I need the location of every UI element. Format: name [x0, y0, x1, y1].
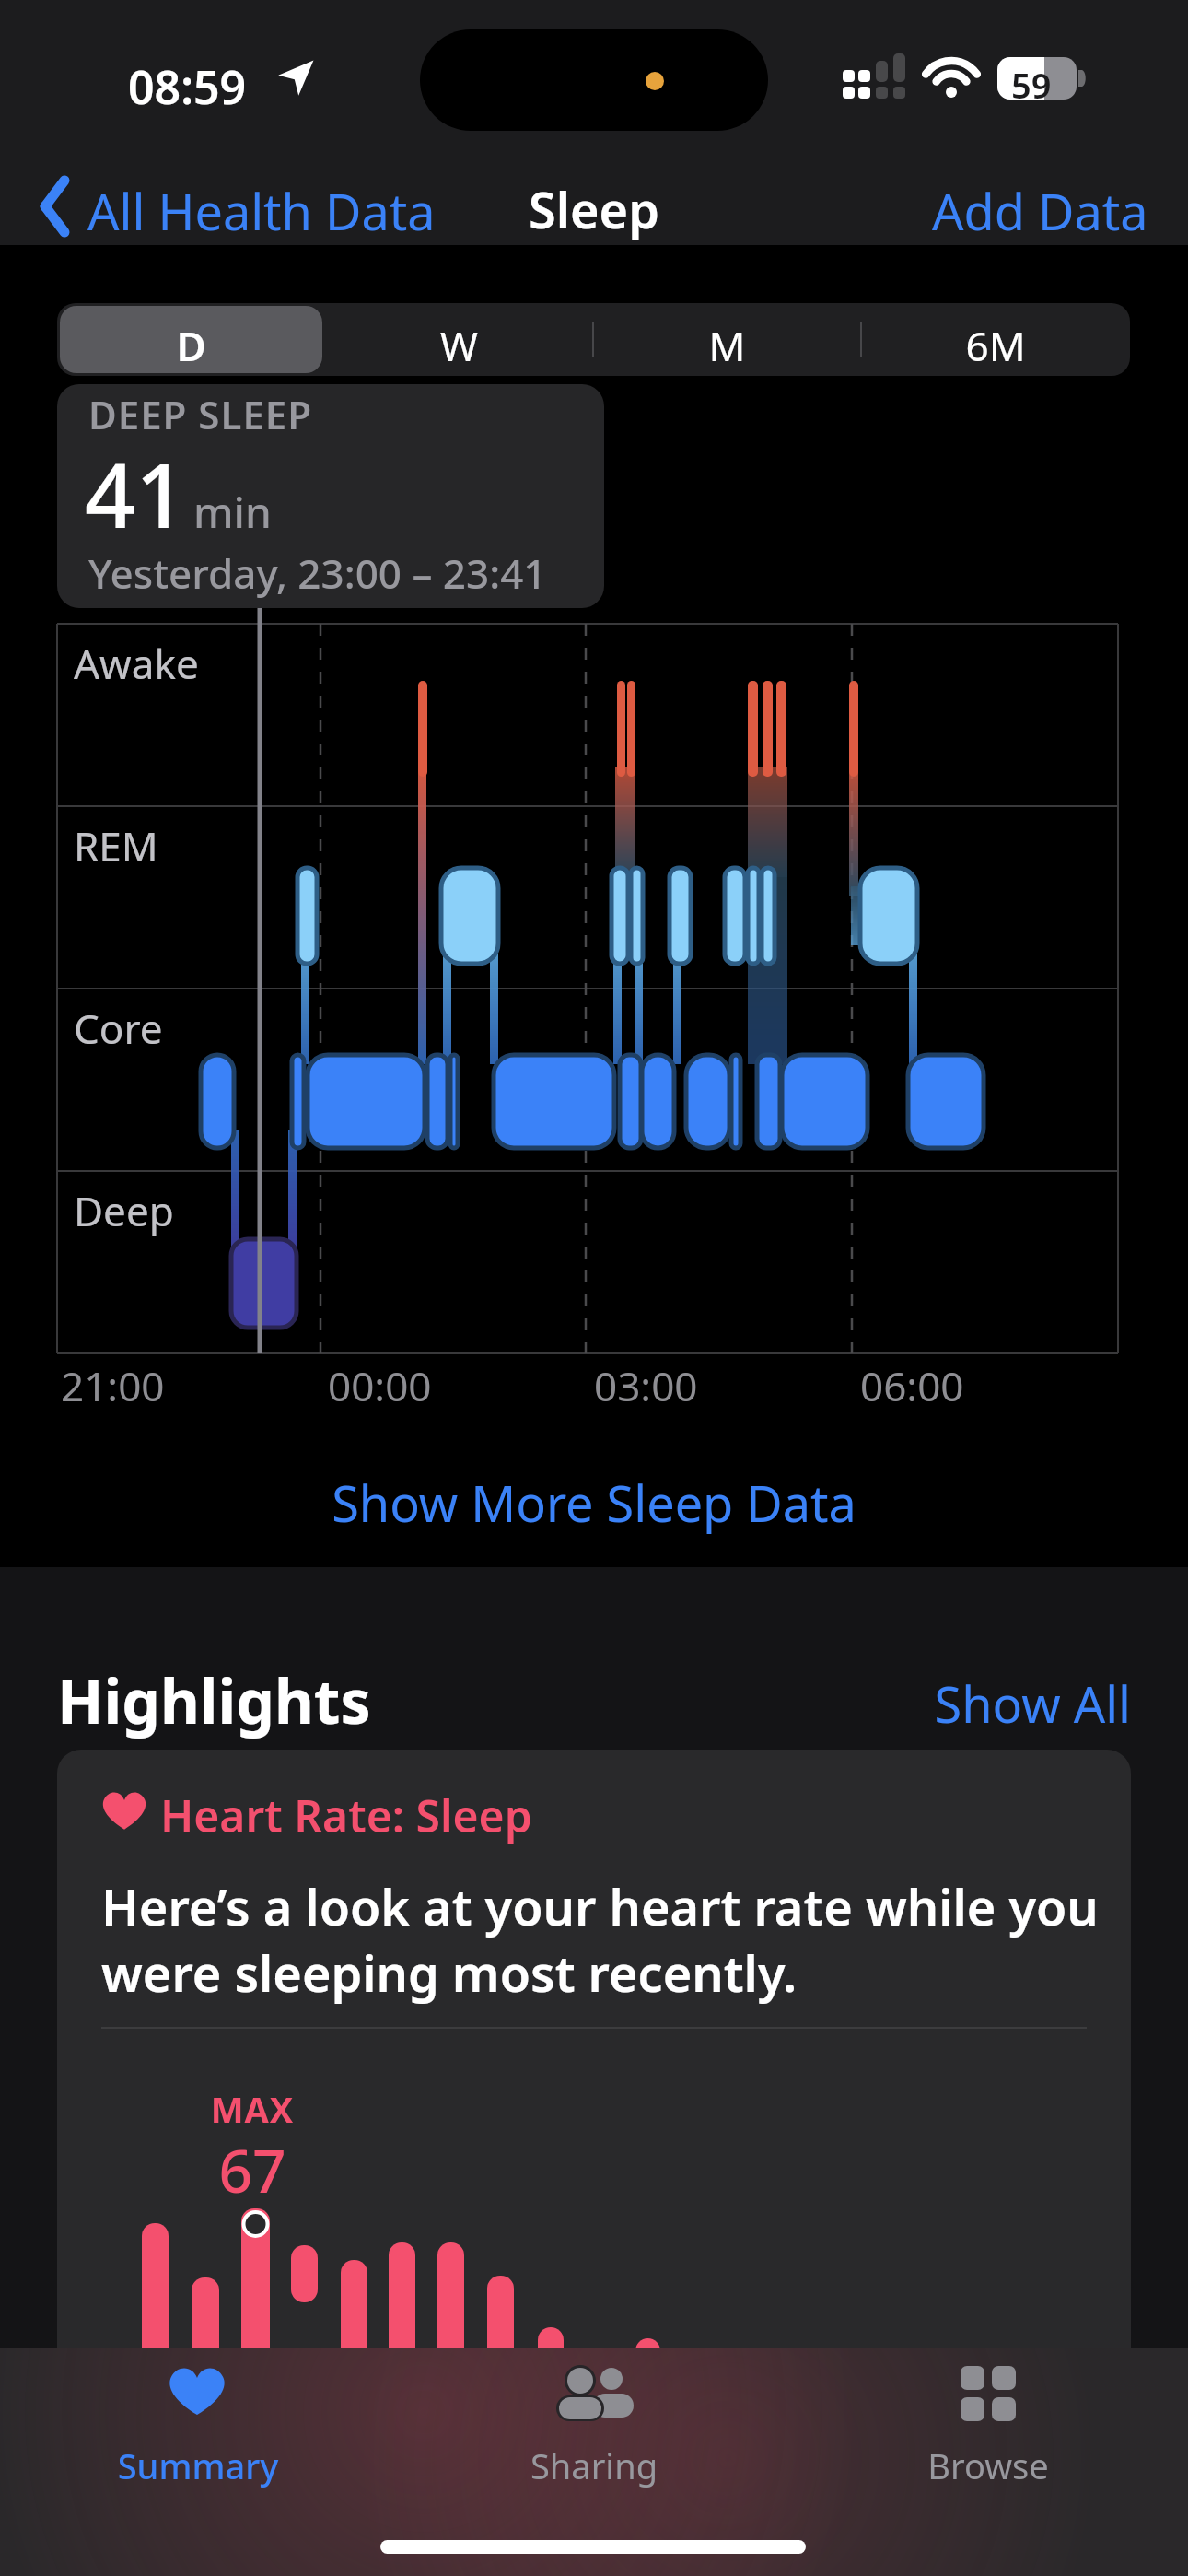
- staticText: REM: [74, 818, 158, 873]
- staticText: min: [193, 483, 272, 541]
- button[interactable]: [861, 303, 1130, 376]
- staticText: 6M: [861, 318, 1130, 373]
- staticText: were sleeping most recently.: [101, 1938, 798, 2007]
- staticText: Browse: [882, 2441, 1094, 2489]
- staticText: Awake: [74, 636, 199, 691]
- staticText: Sharing: [488, 2441, 700, 2489]
- staticText: 67: [147, 2130, 357, 2210]
- button[interactable]: [593, 303, 861, 376]
- staticText: 06:00: [860, 1358, 964, 1413]
- button[interactable]: [92, 2359, 304, 2488]
- staticText: D: [60, 318, 322, 373]
- staticText: Show All: [921, 1669, 1131, 1725]
- button[interactable]: [882, 2359, 1094, 2488]
- button[interactable]: [57, 1750, 1131, 2576]
- staticText: Here’s a look at your heart rate while y…: [101, 1872, 1099, 1940]
- staticText: Show More Sleep Data: [0, 1469, 1188, 1537]
- staticText: 21:00: [61, 1358, 165, 1413]
- staticText: DEEP SLEEP: [88, 388, 313, 440]
- staticText: M: [593, 318, 861, 373]
- staticText: Yesterday, 23:00 – 23:41: [88, 545, 547, 601]
- button[interactable]: Show All: [921, 1669, 1131, 1725]
- staticText: Highlights: [57, 1658, 371, 1741]
- button[interactable]: [488, 2359, 700, 2488]
- staticText: Summary: [92, 2441, 304, 2489]
- staticText: 00:00: [328, 1358, 432, 1413]
- staticText: 41: [85, 433, 186, 554]
- button[interactable]: [325, 303, 593, 376]
- staticText: Add Data: [932, 177, 1148, 245]
- staticText: All Health Data: [87, 177, 436, 245]
- staticText: MAX: [147, 2085, 357, 2133]
- button[interactable]: [60, 306, 322, 373]
- staticText: 03:00: [594, 1358, 698, 1413]
- staticText: W: [325, 318, 593, 373]
- staticText: Heart Rate: Sleep: [160, 1786, 532, 1845]
- staticText: 59: [1011, 61, 1052, 109]
- button[interactable]: [39, 177, 70, 236]
- staticText: 08:59: [128, 55, 247, 118]
- staticText: Deep: [74, 1183, 174, 1238]
- staticText: Core: [74, 1001, 163, 1056]
- staticText: Sleep: [0, 175, 1188, 243]
- button[interactable]: Show More Sleep Data: [0, 1465, 1188, 1533]
